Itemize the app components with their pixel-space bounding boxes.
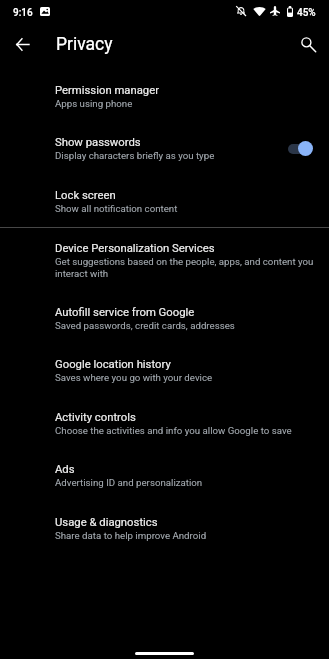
button[interactable]: Permission manager: [0, 72, 329, 124]
button[interactable]: Show passwords toggle, on: [285, 138, 316, 159]
staticText: 9:16: [13, 7, 33, 19]
staticText: 45%: [297, 7, 316, 19]
staticText: Device Personalization Services: [55, 242, 215, 255]
button[interactable]: Activity controls: [0, 399, 329, 451]
button[interactable]: Show passwords: [0, 124, 329, 177]
staticText: Display characters briefly as you type: [55, 150, 285, 161]
staticText: Lock screen: [55, 189, 116, 202]
staticText: Activity controls: [55, 411, 136, 424]
staticText: Advertising ID and personalization: [55, 477, 317, 488]
staticText: Google location history: [55, 358, 171, 371]
staticText: Privacy: [56, 34, 113, 55]
staticText: Saves where you go with your device: [55, 372, 317, 383]
staticText: Get suggestions based on the people, app…: [55, 256, 317, 279]
staticText: Ads: [55, 463, 75, 476]
staticText: Saved passwords, credit cards, addresses: [55, 320, 317, 331]
button[interactable]: Lock screen: [0, 177, 329, 227]
button[interactable]: Usage & diagnostics: [0, 504, 329, 556]
staticText: Choose the activities and info you allow…: [55, 425, 317, 436]
staticText: Show all notification content: [55, 203, 317, 214]
button[interactable]: Autofill service from Google: [0, 293, 329, 346]
button[interactable]: Device Personalization Services: [0, 231, 329, 293]
button[interactable]: Search: [292, 28, 325, 61]
staticText: Permission manager: [55, 84, 160, 97]
staticText: Autofill service from Google: [55, 306, 195, 319]
button[interactable]: Ads: [0, 451, 329, 504]
staticText: Usage & diagnostics: [55, 516, 158, 529]
staticText: Apps using phone: [55, 98, 317, 109]
button[interactable]: Google location history: [0, 346, 329, 399]
staticText: Share data to help improve Android: [55, 530, 317, 541]
staticText: Show passwords: [55, 136, 141, 149]
button[interactable]: Navigate up: [6, 28, 39, 61]
